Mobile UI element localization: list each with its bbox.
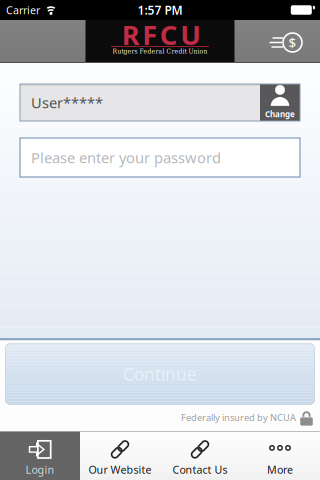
staticText: Federally insured by NCUA bbox=[181, 411, 296, 424]
button[interactable]: Contact Us bbox=[160, 431, 240, 480]
button[interactable]: Login bbox=[0, 431, 80, 480]
staticText: More bbox=[267, 462, 293, 477]
button[interactable]: More bbox=[240, 431, 320, 480]
staticText: Change bbox=[265, 109, 295, 119]
staticText: Contact Us bbox=[172, 462, 227, 477]
staticText: User***** bbox=[31, 93, 103, 112]
staticText: 1:57 PM bbox=[137, 2, 182, 18]
button[interactable]: Continue bbox=[5, 343, 315, 404]
staticText: Continue bbox=[123, 362, 197, 385]
button[interactable]: Change user bbox=[260, 84, 300, 121]
staticText: Carrier bbox=[6, 3, 40, 17]
button[interactable]: Quick Balance bbox=[255, 25, 306, 60]
staticText: Our Website bbox=[88, 462, 151, 477]
staticText: Rutgers Federal Credit Union bbox=[112, 47, 207, 55]
staticText: Please enter your password bbox=[31, 148, 221, 167]
button[interactable]: Our Website bbox=[80, 431, 160, 480]
staticText: RFCU bbox=[122, 16, 201, 53]
staticText: Login bbox=[25, 462, 54, 477]
staticText: $ bbox=[288, 34, 296, 51]
